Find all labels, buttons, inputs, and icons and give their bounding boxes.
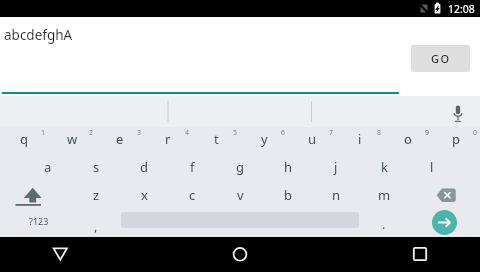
- staticText: r: [165, 130, 171, 148]
- button[interactable]: m: [360, 180, 408, 210]
- button[interactable]: f: [168, 152, 216, 182]
- button[interactable]: [40, 240, 80, 268]
- button[interactable]: k: [360, 152, 408, 182]
- button[interactable]: z: [72, 180, 120, 210]
- staticText: o: [404, 130, 412, 148]
- staticText: ?123: [29, 215, 49, 227]
- staticText: 8: [377, 128, 382, 138]
- staticText: s: [93, 158, 100, 176]
- staticText: i: [358, 130, 362, 148]
- staticText: k: [381, 158, 388, 176]
- button[interactable]: u: [288, 124, 336, 154]
- staticText: 4: [185, 128, 190, 138]
- button[interactable]: t: [192, 124, 240, 154]
- button[interactable]: e: [96, 124, 144, 154]
- button[interactable]: [408, 178, 480, 208]
- staticText: 1: [41, 128, 46, 138]
- button[interactable]: c: [168, 180, 216, 210]
- staticText: b: [284, 186, 292, 204]
- staticText: c: [189, 186, 196, 204]
- staticText: w: [67, 130, 78, 148]
- button[interactable]: a: [24, 152, 72, 182]
- staticText: z: [93, 186, 100, 204]
- button[interactable]: o: [384, 124, 432, 154]
- button[interactable]: GO: [411, 45, 470, 72]
- staticText: v: [237, 186, 244, 204]
- button[interactable]: s: [72, 152, 120, 182]
- staticText: 7: [329, 128, 334, 138]
- staticText: m: [378, 186, 391, 204]
- button[interactable]: [432, 210, 457, 235]
- button[interactable]: [220, 240, 260, 268]
- staticText: GO: [431, 51, 451, 66]
- staticText: y: [261, 130, 268, 148]
- button[interactable]: d: [120, 152, 168, 182]
- button[interactable]: h: [264, 152, 312, 182]
- button[interactable]: [0, 178, 72, 208]
- staticText: .: [382, 215, 386, 233]
- button[interactable]: g: [216, 152, 264, 182]
- staticText: p: [452, 130, 460, 148]
- button[interactable]: .: [360, 209, 408, 239]
- button[interactable]: v: [216, 180, 264, 210]
- staticText: d: [140, 158, 148, 176]
- button[interactable]: ?123: [9, 206, 69, 236]
- staticText: abcdefghA: [4, 26, 73, 44]
- staticText: 9: [425, 128, 430, 138]
- staticText: t: [214, 130, 219, 148]
- button[interactable]: b: [264, 180, 312, 210]
- staticText: x: [141, 186, 148, 204]
- staticText: l: [430, 158, 434, 176]
- button[interactable]: ,: [72, 211, 120, 241]
- button[interactable]: i: [336, 124, 384, 154]
- staticText: a: [44, 158, 52, 176]
- button[interactable]: x: [120, 180, 168, 210]
- staticText: 0: [473, 128, 478, 138]
- button[interactable]: w: [48, 124, 96, 154]
- staticText: 6: [281, 128, 286, 138]
- button[interactable]: j: [312, 152, 360, 182]
- button[interactable]: n: [312, 180, 360, 210]
- staticText: f: [190, 158, 195, 176]
- staticText: q: [20, 130, 28, 148]
- button[interactable]: y: [240, 124, 288, 154]
- staticText: g: [236, 158, 244, 176]
- button[interactable]: [400, 240, 440, 268]
- staticText: n: [332, 186, 341, 204]
- staticText: 2: [89, 128, 94, 138]
- staticText: e: [116, 130, 124, 148]
- button[interactable]: q: [0, 124, 48, 154]
- staticText: 3: [137, 128, 142, 138]
- staticText: 12:08: [448, 2, 475, 16]
- staticText: ,: [94, 217, 98, 235]
- button[interactable]: l: [408, 152, 456, 182]
- staticText: j: [334, 158, 338, 176]
- button[interactable]: p: [432, 124, 480, 154]
- staticText: 5: [233, 128, 238, 138]
- button[interactable]: r: [144, 124, 192, 154]
- staticText: u: [308, 130, 317, 148]
- button[interactable]: [446, 96, 470, 127]
- staticText: h: [284, 158, 293, 176]
